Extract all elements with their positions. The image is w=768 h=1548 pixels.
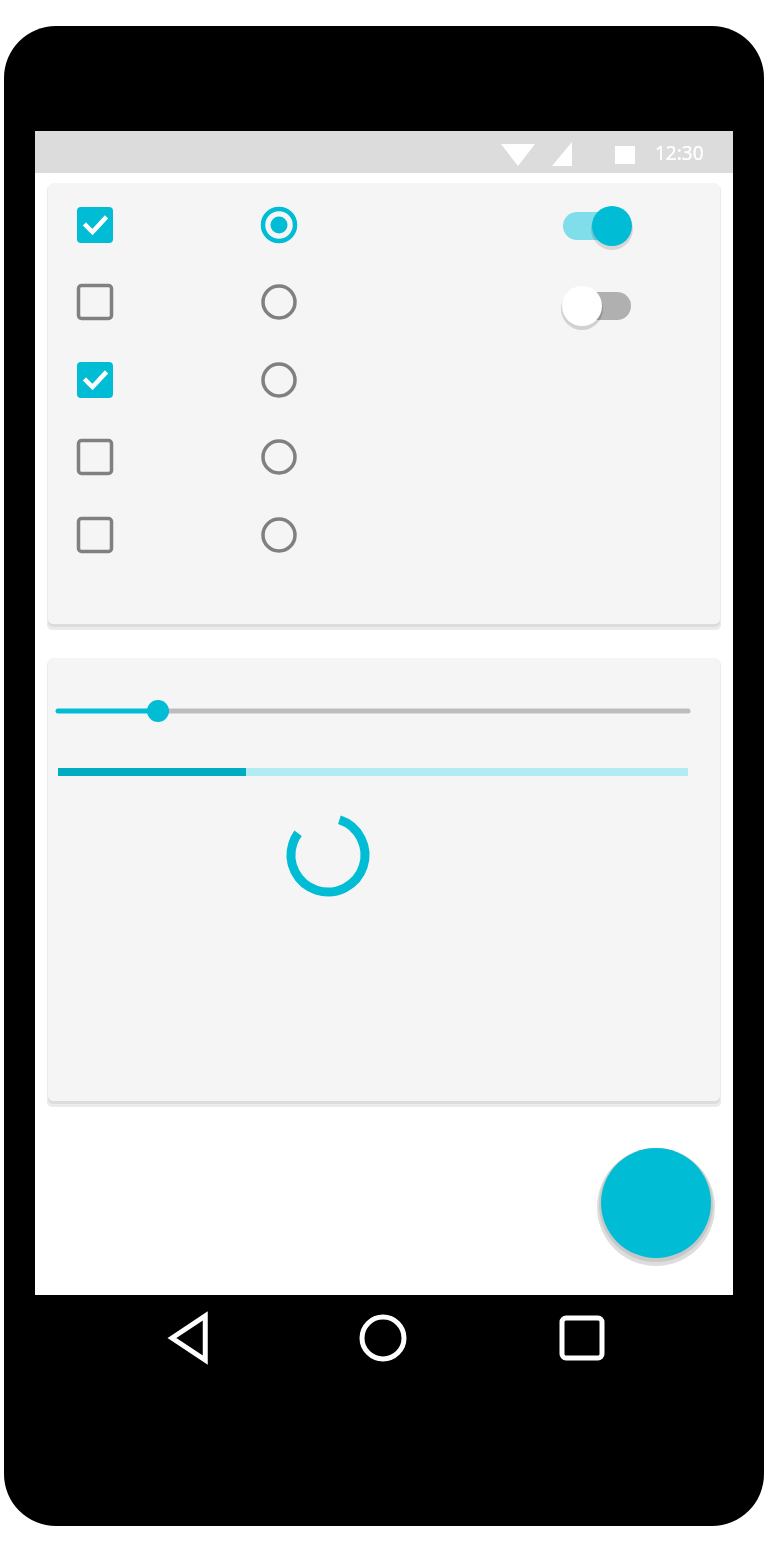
button[interactable]: Checkbox — [77, 284, 113, 320]
button[interactable]: Slider — [58, 691, 688, 731]
button[interactable]: Recents — [546, 1302, 618, 1374]
button[interactable]: Home — [347, 1302, 419, 1374]
button[interactable]: Checkbox — [77, 362, 113, 398]
button[interactable]: Radio button — [261, 517, 297, 553]
button[interactable]: Radio button — [261, 362, 297, 398]
staticText: 12:30 — [655, 140, 704, 166]
button[interactable]: Radio button — [261, 439, 297, 475]
button[interactable]: Checkbox — [77, 517, 113, 553]
button[interactable]: Add — [601, 1148, 711, 1258]
button[interactable]: Switch on — [563, 206, 633, 246]
button[interactable]: Radio button — [261, 284, 297, 320]
button[interactable]: Radio button — [261, 207, 297, 243]
button[interactable]: Switch off — [563, 286, 633, 326]
button[interactable]: Checkbox — [77, 439, 113, 475]
button[interactable]: Checkbox — [77, 207, 113, 243]
button[interactable]: Back — [155, 1302, 227, 1374]
